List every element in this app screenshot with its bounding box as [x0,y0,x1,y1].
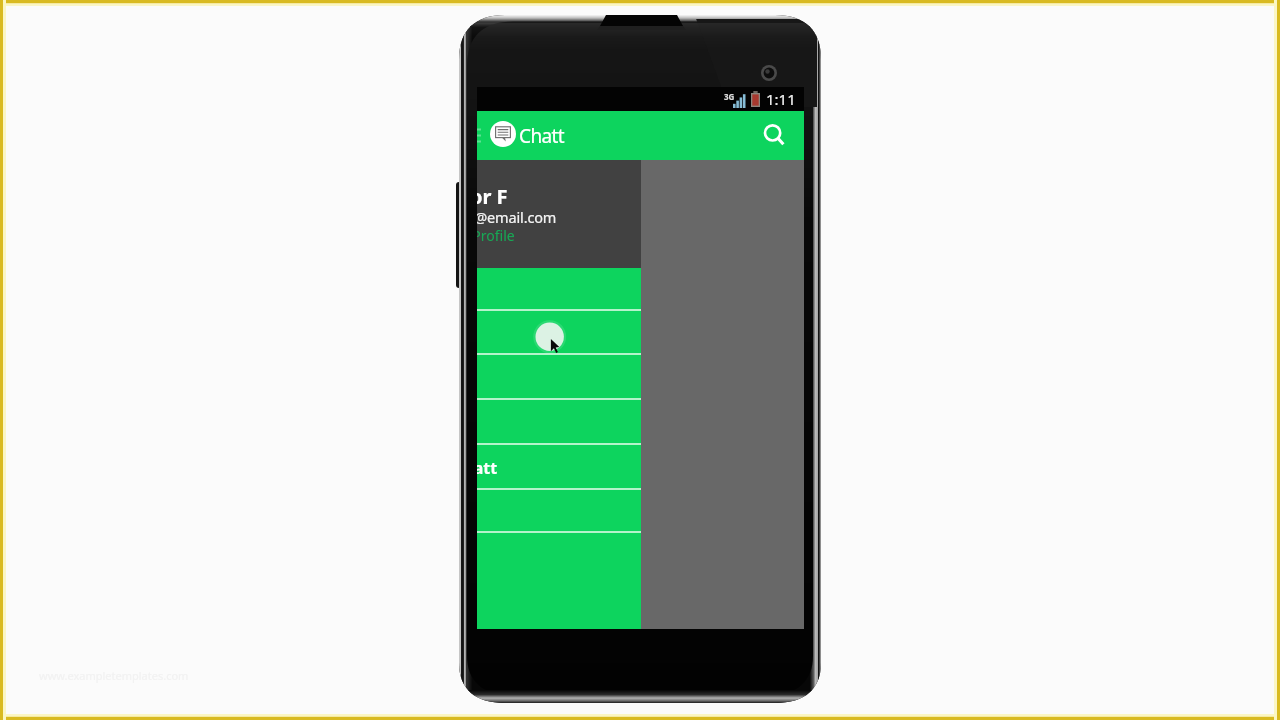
button[interactable]: Chatt [477,445,641,490]
staticText: www.exampletemplates.com [39,668,189,683]
staticText: View Profile [477,226,515,245]
button[interactable]: Messages [477,311,641,355]
button[interactable]: Groups [477,400,641,445]
button[interactable]: Settings [477,490,641,533]
button[interactable]: Home [477,268,641,311]
staticText: 1:11 [766,89,796,109]
button[interactable]: Victor F, victor@email.com, View Profile [477,160,641,268]
button[interactable]: Chatt [490,123,565,149]
staticText: Chatt [519,123,565,149]
staticText: victor@email.com [477,207,557,227]
staticText: 3G [724,91,735,102]
staticText: Victor F [477,183,508,210]
staticText: Chatt [477,457,498,479]
button[interactable]: Open navigation drawer [477,111,481,160]
button[interactable]: Search [752,113,798,159]
button[interactable]: Contacts [477,355,641,400]
